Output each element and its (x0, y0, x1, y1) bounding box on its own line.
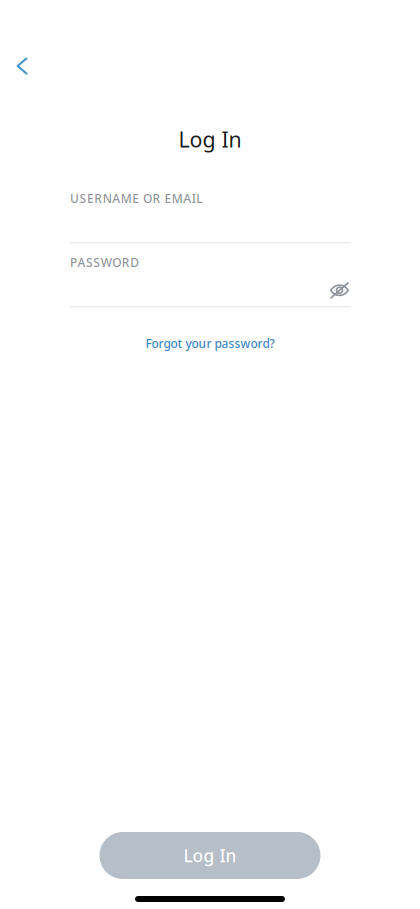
button[interactable]: Forgot your password? (131, 327, 288, 359)
button[interactable]: Log In (99, 832, 320, 879)
button[interactable]: USERNAME OR EMAIL (70, 153, 351, 243)
staticText: PASSWORD (70, 254, 139, 270)
staticText: USERNAME OR EMAIL (70, 190, 202, 206)
staticText: Log In (178, 125, 241, 153)
staticText: Forgot your password? (145, 335, 274, 351)
button[interactable]: Show password (328, 275, 351, 301)
button[interactable]: Back (0, 44, 44, 88)
staticText: Log In (183, 844, 236, 867)
